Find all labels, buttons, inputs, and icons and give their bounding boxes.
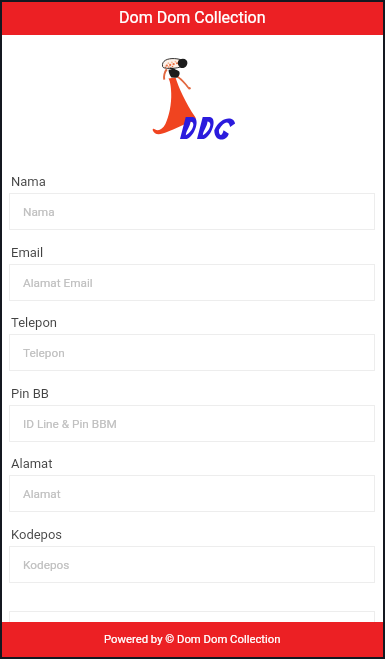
staticText: Alamat Email: [23, 276, 93, 290]
button[interactable]: Powered by © Dom Dom Collection: [0, 622, 385, 659]
staticText: Pin BB: [11, 386, 49, 401]
staticText: Telepon: [23, 346, 65, 360]
staticText: Email: [11, 245, 44, 260]
staticText: Kodepos: [23, 558, 70, 572]
staticText: Nama: [11, 174, 46, 189]
staticText: Alamat: [23, 487, 61, 501]
staticText: Dom Dom Collection: [119, 8, 266, 27]
button[interactable]: [9, 611, 375, 648]
button[interactable]: Nama: [9, 193, 375, 230]
staticText: Telepon: [11, 315, 57, 330]
button[interactable]: Alamat Email: [9, 264, 375, 301]
staticText: Nama: [23, 205, 55, 219]
button[interactable]: Alamat: [9, 475, 375, 512]
button[interactable]: Telepon: [9, 334, 375, 371]
staticText: Powered by © Dom Dom Collection: [104, 633, 281, 646]
staticText: Alamat: [11, 456, 53, 471]
button[interactable]: Dom Dom Collection: [0, 0, 385, 35]
staticText: Kodepos: [11, 527, 63, 542]
staticText: ID Line & Pin BBM: [23, 417, 117, 431]
button[interactable]: Kodepos: [9, 546, 375, 583]
button[interactable]: ID Line & Pin BBM: [9, 405, 375, 442]
